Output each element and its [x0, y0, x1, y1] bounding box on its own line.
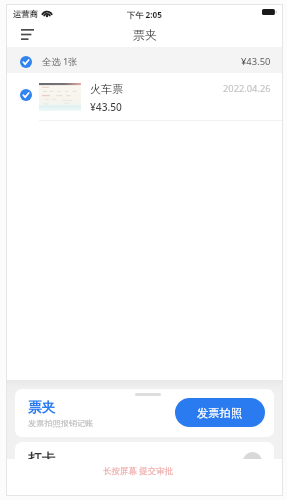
- button[interactable]: 打卡: [15, 442, 274, 482]
- button[interactable]: 票夹: [15, 389, 274, 437]
- button[interactable]: 发票拍照: [175, 398, 265, 427]
- staticText: ¥43.50: [90, 100, 122, 114]
- staticText: 运营商: [13, 9, 38, 19]
- staticText: 2022.04.26: [223, 82, 271, 95]
- staticText: 打卡: [28, 450, 55, 467]
- staticText: 火车票: [90, 82, 124, 96]
- button[interactable]: 火车票: [7, 73, 282, 120]
- staticText: ¥43.50: [241, 55, 271, 68]
- staticText: 下午 2:05: [127, 9, 162, 20]
- staticText: 票夹: [133, 27, 157, 42]
- staticText: 发票拍照报销记账: [28, 418, 94, 428]
- staticText: 全选 1张: [42, 55, 78, 68]
- staticText: 长按屏幕 提交审批: [103, 465, 174, 477]
- staticText: 发票拍照: [197, 406, 243, 420]
- button[interactable]: 全选 1张: [7, 47, 282, 73]
- button[interactable]: Menu: [18, 25, 36, 43]
- staticText: 票夹: [28, 399, 55, 416]
